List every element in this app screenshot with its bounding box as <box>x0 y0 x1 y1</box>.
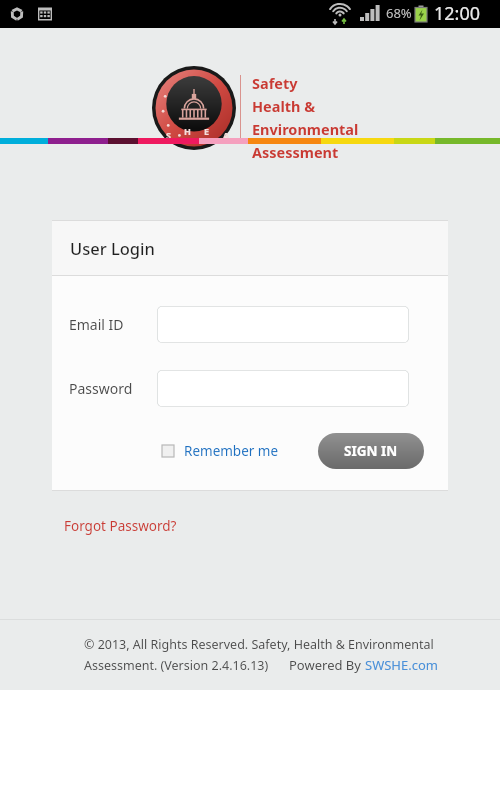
staticText: Safety <box>252 73 298 93</box>
staticText: SIGN IN <box>344 442 398 460</box>
staticText: © 2013, All Rights Reserved. Safety, Hea… <box>84 636 434 653</box>
staticText: E <box>204 125 210 137</box>
button[interactable]: Remember me <box>162 442 279 460</box>
button[interactable]: SIGN IN <box>318 433 424 469</box>
staticText: Environmental <box>252 119 359 139</box>
staticText: Powered By <box>289 656 365 674</box>
button[interactable]: Password <box>157 370 409 407</box>
staticText: A <box>223 129 230 141</box>
staticText: Password <box>69 379 133 398</box>
staticText: User Login <box>70 237 155 259</box>
button[interactable]: Forgot Password? <box>64 517 177 535</box>
staticText: S <box>166 129 171 141</box>
staticText: Remember me <box>184 442 279 460</box>
button[interactable]: SWSHE.com <box>365 656 438 674</box>
staticText: Assessment. (Version 2.4.16.13) <box>84 657 269 674</box>
staticText: 68% <box>386 4 412 22</box>
staticText: H <box>184 125 191 137</box>
staticText: Assessment <box>252 142 339 162</box>
staticText: Email ID <box>69 315 124 334</box>
button[interactable]: Email ID <box>157 306 409 343</box>
staticText: 12:00 <box>434 1 481 26</box>
staticText: Health & <box>252 96 316 116</box>
